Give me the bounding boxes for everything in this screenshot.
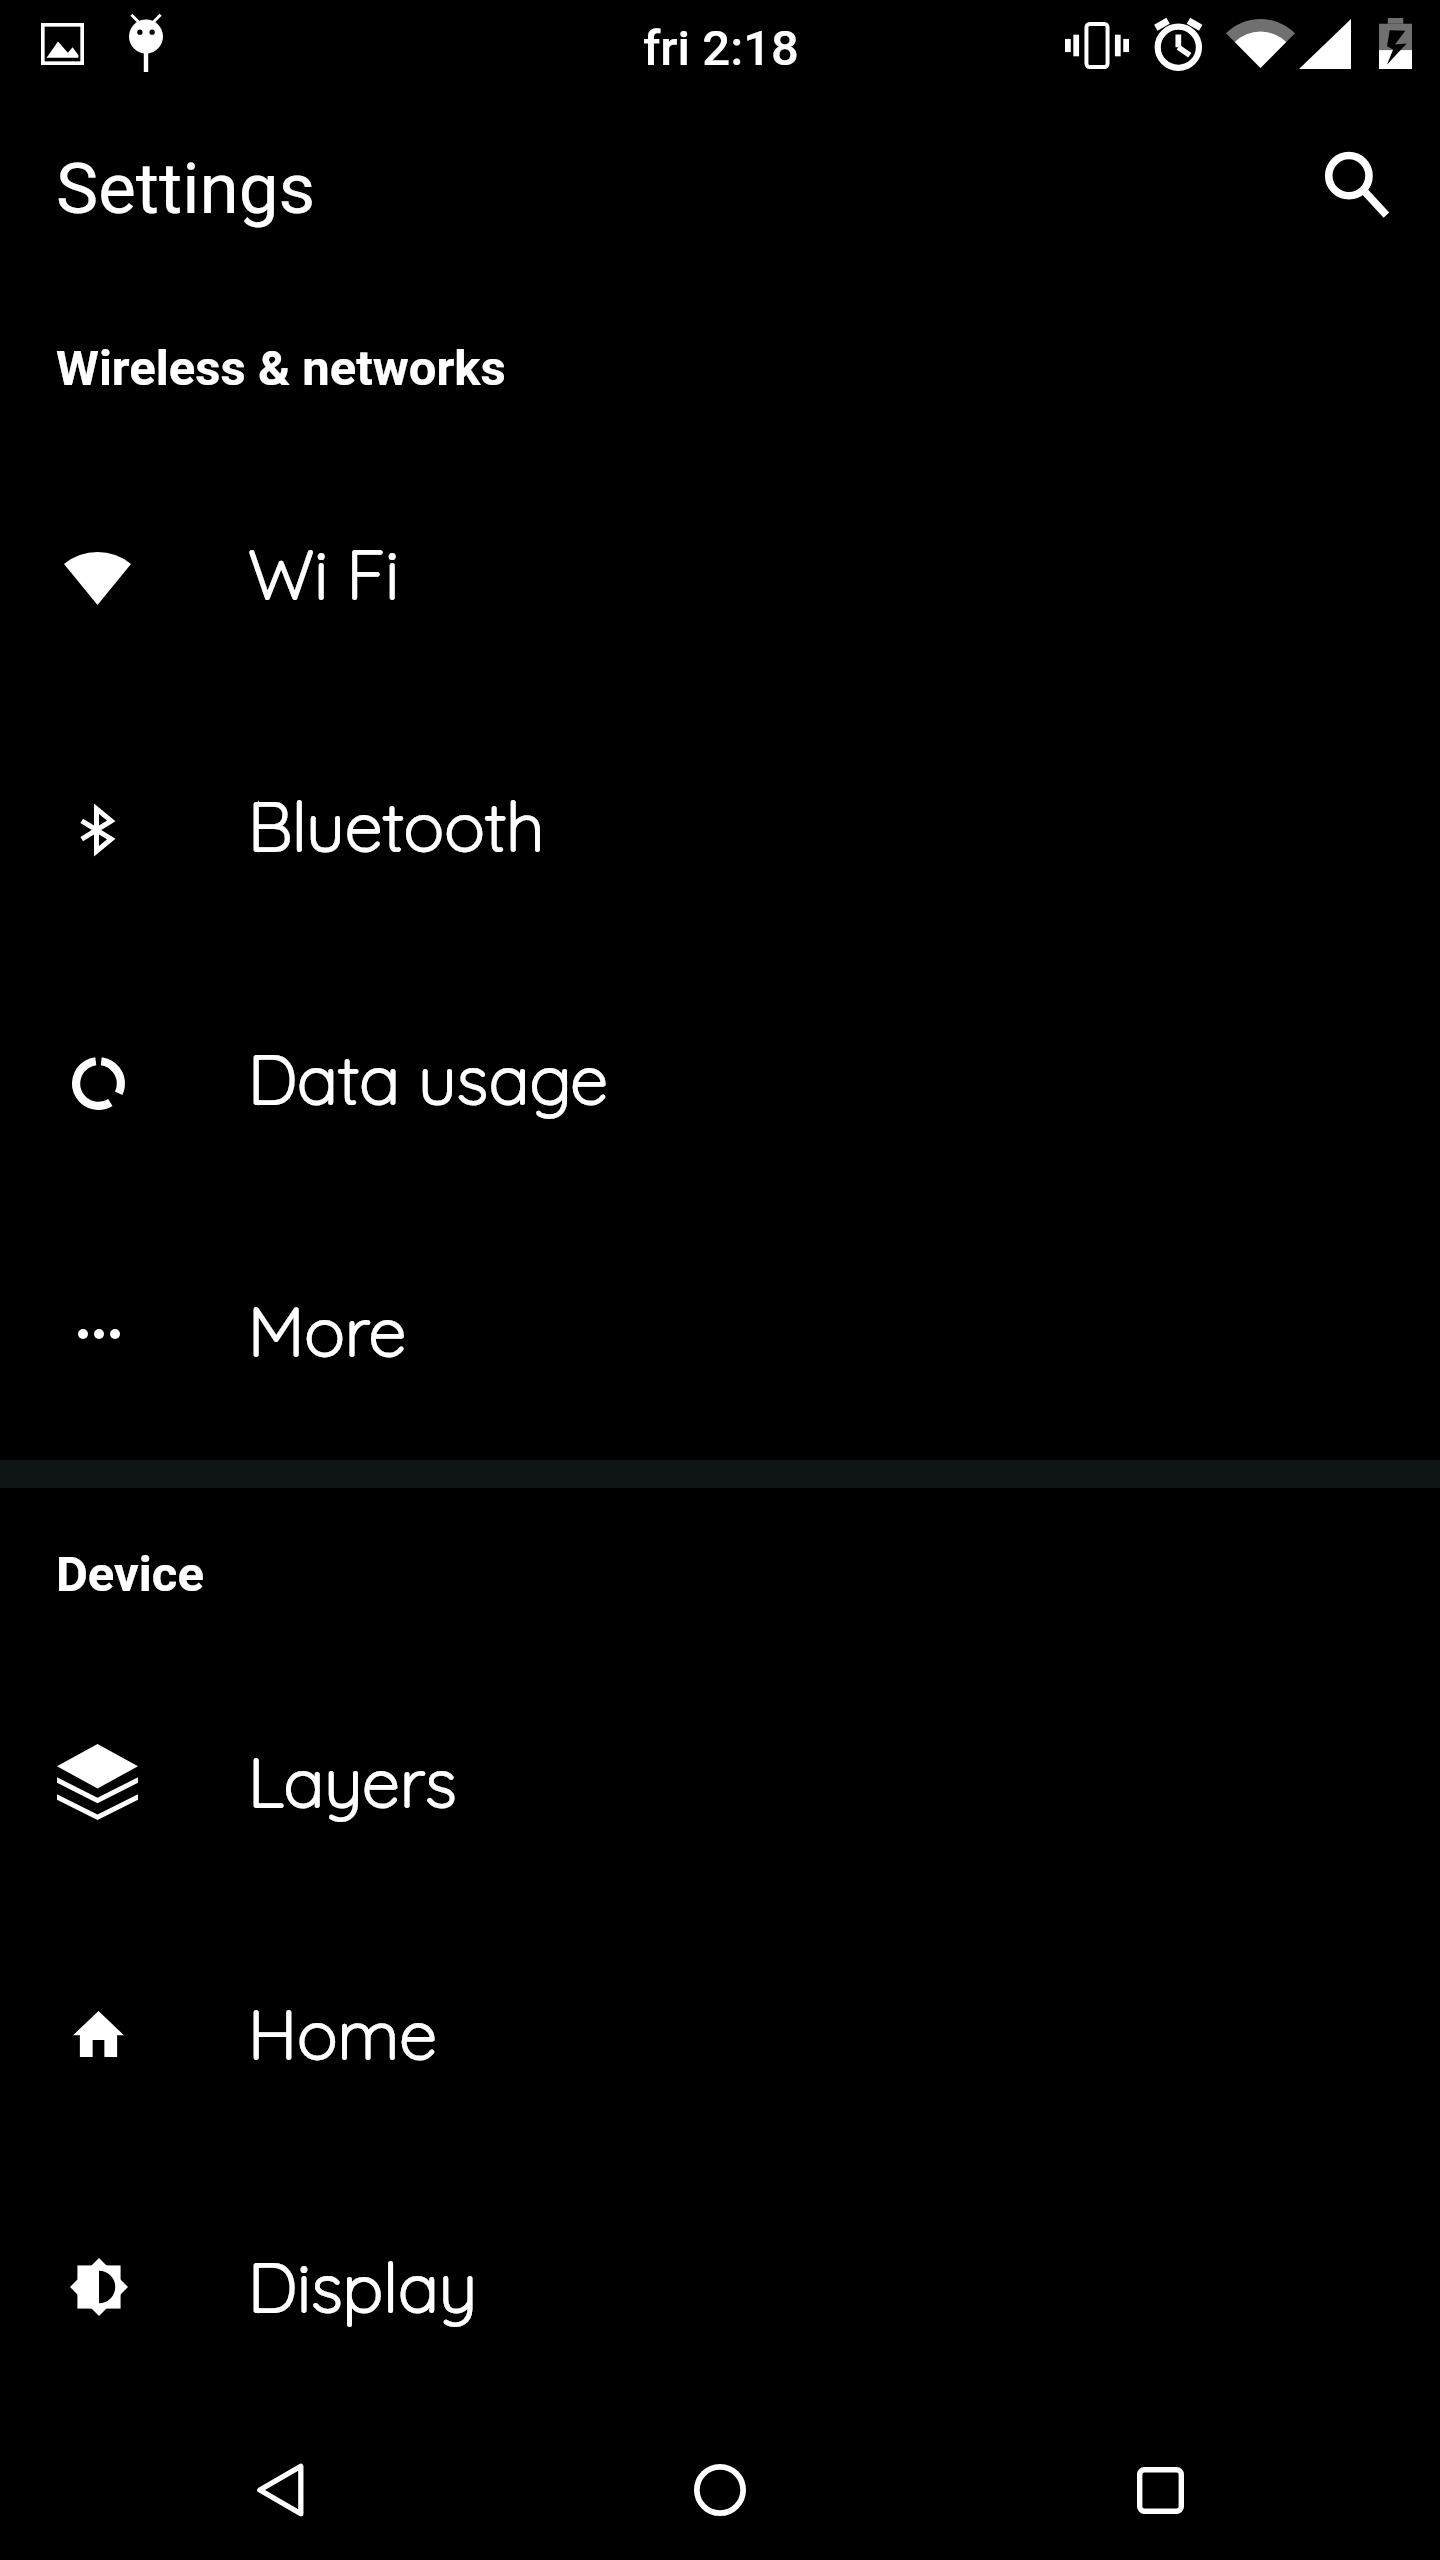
staticText: Wi Fi xyxy=(248,531,400,616)
staticText: Layers xyxy=(248,1739,457,1824)
button[interactable]: Home xyxy=(600,2420,840,2560)
staticText: Display xyxy=(248,2244,477,2329)
button[interactable]: Back xyxy=(160,2420,400,2560)
staticText: fri 2:18 xyxy=(643,20,799,77)
staticText: Wireless & networks xyxy=(56,340,506,397)
staticText: Home xyxy=(248,1991,438,2076)
staticText: Bluetooth xyxy=(248,783,545,868)
button[interactable]: Layers xyxy=(0,1651,1440,1903)
staticText: Settings xyxy=(56,147,316,230)
button[interactable]: Display xyxy=(0,2156,1440,2408)
staticText: Device xyxy=(56,1546,204,1603)
button[interactable]: Data usage xyxy=(0,948,1440,1200)
button[interactable]: More xyxy=(0,1200,1440,1452)
staticText: More xyxy=(248,1288,407,1373)
button[interactable]: Bluetooth xyxy=(0,695,1440,947)
button[interactable]: Home xyxy=(0,1903,1440,2155)
button[interactable]: Recents xyxy=(1040,2420,1280,2560)
button[interactable]: Search xyxy=(1285,128,1425,238)
button[interactable]: Wi Fi xyxy=(0,443,1440,695)
staticText: Data usage xyxy=(248,1036,608,1121)
